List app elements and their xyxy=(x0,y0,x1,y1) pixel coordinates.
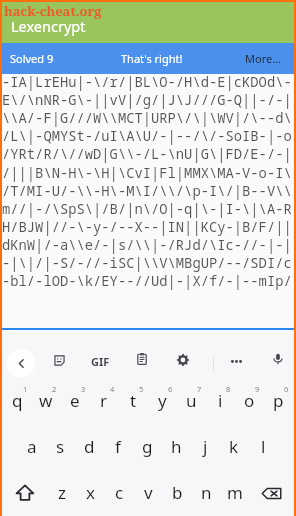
button[interactable]: 0 xyxy=(264,381,292,415)
button[interactable]: 7 xyxy=(177,381,205,415)
button[interactable]: Clipboard xyxy=(130,347,154,371)
staticText: /T/MI-U/-\\-H\-M\I/\\/\p-I\/|B--V\\ xyxy=(2,181,292,200)
staticText: x xyxy=(86,481,95,504)
button[interactable]: x xyxy=(76,475,104,509)
button[interactable]: s xyxy=(46,427,74,461)
staticText: p xyxy=(273,389,284,412)
staticText: 8 xyxy=(226,384,231,394)
button[interactable]: More... xyxy=(230,43,296,74)
staticText: 7 xyxy=(197,384,202,394)
button[interactable]: v xyxy=(134,475,162,509)
staticText: \\A/-F|G///W\\MCT|URP\/\|\WV|/\--d\ xyxy=(2,108,292,127)
button[interactable]: 1 xyxy=(3,381,31,415)
button[interactable]: 2 xyxy=(32,381,60,415)
staticText: 0 xyxy=(284,384,289,394)
staticText: i xyxy=(218,389,223,412)
staticText: k xyxy=(229,435,239,458)
staticText: Solved 9 xyxy=(10,51,54,66)
staticText: y xyxy=(158,389,167,412)
staticText: j xyxy=(203,435,208,458)
staticText: 3 xyxy=(81,384,86,394)
button[interactable]: Solved 9 xyxy=(2,43,102,74)
staticText: 1 xyxy=(23,384,28,394)
button[interactable]: 9 xyxy=(235,381,263,415)
staticText: Lexencrypt xyxy=(11,16,86,36)
staticText: m xyxy=(227,481,243,504)
staticText: b xyxy=(172,481,183,504)
button[interactable]: a xyxy=(18,427,46,461)
staticText: v xyxy=(144,481,153,504)
staticText: s xyxy=(56,435,65,458)
button[interactable]: 4 xyxy=(90,381,118,415)
staticText: GIF xyxy=(91,354,110,369)
staticText: 6 xyxy=(168,384,173,394)
button[interactable]: c xyxy=(105,475,133,509)
button[interactable]: Settings xyxy=(171,348,195,372)
button[interactable]: Back xyxy=(7,349,35,377)
button[interactable]: f xyxy=(104,427,132,461)
staticText: u xyxy=(186,389,197,412)
staticText: h xyxy=(171,435,182,458)
staticText: H/BJW|//-\-y-/--X--|IN||KCy-|B/F/|| xyxy=(2,217,292,236)
button[interactable]: k xyxy=(220,427,248,461)
button[interactable]: Voice input xyxy=(266,347,290,371)
staticText: 9 xyxy=(255,384,260,394)
button[interactable]: g xyxy=(133,427,161,461)
staticText: a xyxy=(27,435,37,458)
staticText: o xyxy=(244,389,255,412)
button[interactable]: b xyxy=(163,475,191,509)
button[interactable]: 3 xyxy=(61,381,89,415)
staticText: /|||B\N-H\-\H|\CvI|Fl|MMX\MA-V-o-I\ xyxy=(2,163,292,182)
staticText: 4 xyxy=(110,384,115,394)
staticText: n xyxy=(201,481,212,504)
staticText: -|\|/|-S/-//-iSC|\\V\MBgUP/--/SDI/c xyxy=(2,253,292,272)
staticText: g xyxy=(142,435,153,458)
staticText: /L\|-QMYSt-/uI\A\U/-|--/\/-SoIB-|-o xyxy=(2,126,292,145)
staticText: 2 xyxy=(52,384,57,394)
button[interactable]: l xyxy=(249,427,277,461)
staticText: hack-cheat.org xyxy=(4,2,102,20)
staticText: That's right! xyxy=(121,51,183,66)
staticText: More... xyxy=(245,51,282,66)
staticText: 5 xyxy=(139,384,144,394)
button[interactable]: d xyxy=(75,427,103,461)
staticText: -bl/-lOD-\k/EY--//Ud|-|X/f/-|--mIp/ xyxy=(2,271,292,290)
staticText: d xyxy=(84,435,95,458)
staticText: c xyxy=(115,481,124,504)
button[interactable]: m xyxy=(221,475,249,509)
staticText: m//|-/\SpS\|/B/|n\/O|-q|\-|I-\|\A-R xyxy=(2,199,292,218)
button[interactable]: n xyxy=(192,475,220,509)
button[interactable]: Shift xyxy=(10,478,40,508)
button[interactable]: More options xyxy=(224,349,248,373)
staticText: t xyxy=(130,389,137,412)
button[interactable]: Backspace xyxy=(255,478,287,508)
staticText: l xyxy=(261,435,266,458)
staticText: z xyxy=(58,481,66,504)
staticText: w xyxy=(39,389,53,412)
staticText: f xyxy=(115,435,121,458)
button[interactable]: h xyxy=(162,427,190,461)
staticText: -IA|LrEHu|-\/r/|BL\O-/H\d-E|cKDOd\- xyxy=(2,72,292,91)
button[interactable]: z xyxy=(48,475,76,509)
button[interactable]: 6 xyxy=(148,381,176,415)
staticText: /YRt/R/\//wD|G\\-/L-\nU|G\|FD/E-/-| xyxy=(2,144,292,163)
staticText: r xyxy=(100,389,108,412)
staticText: E\/\nNR-G\-||vV|/g/|J\J///G-Q||-/-| xyxy=(2,90,292,109)
button[interactable]: Sticker xyxy=(47,348,71,372)
staticText: q xyxy=(12,389,23,412)
staticText: dKnW|/-a\\e/-|s/\\|-/RJd/\Ic-//-|-| xyxy=(2,235,292,254)
button[interactable]: j xyxy=(191,427,219,461)
button[interactable]: GIF xyxy=(88,349,112,373)
button[interactable]: 8 xyxy=(206,381,234,415)
button[interactable]: 5 xyxy=(119,381,147,415)
staticText: e xyxy=(70,389,80,412)
